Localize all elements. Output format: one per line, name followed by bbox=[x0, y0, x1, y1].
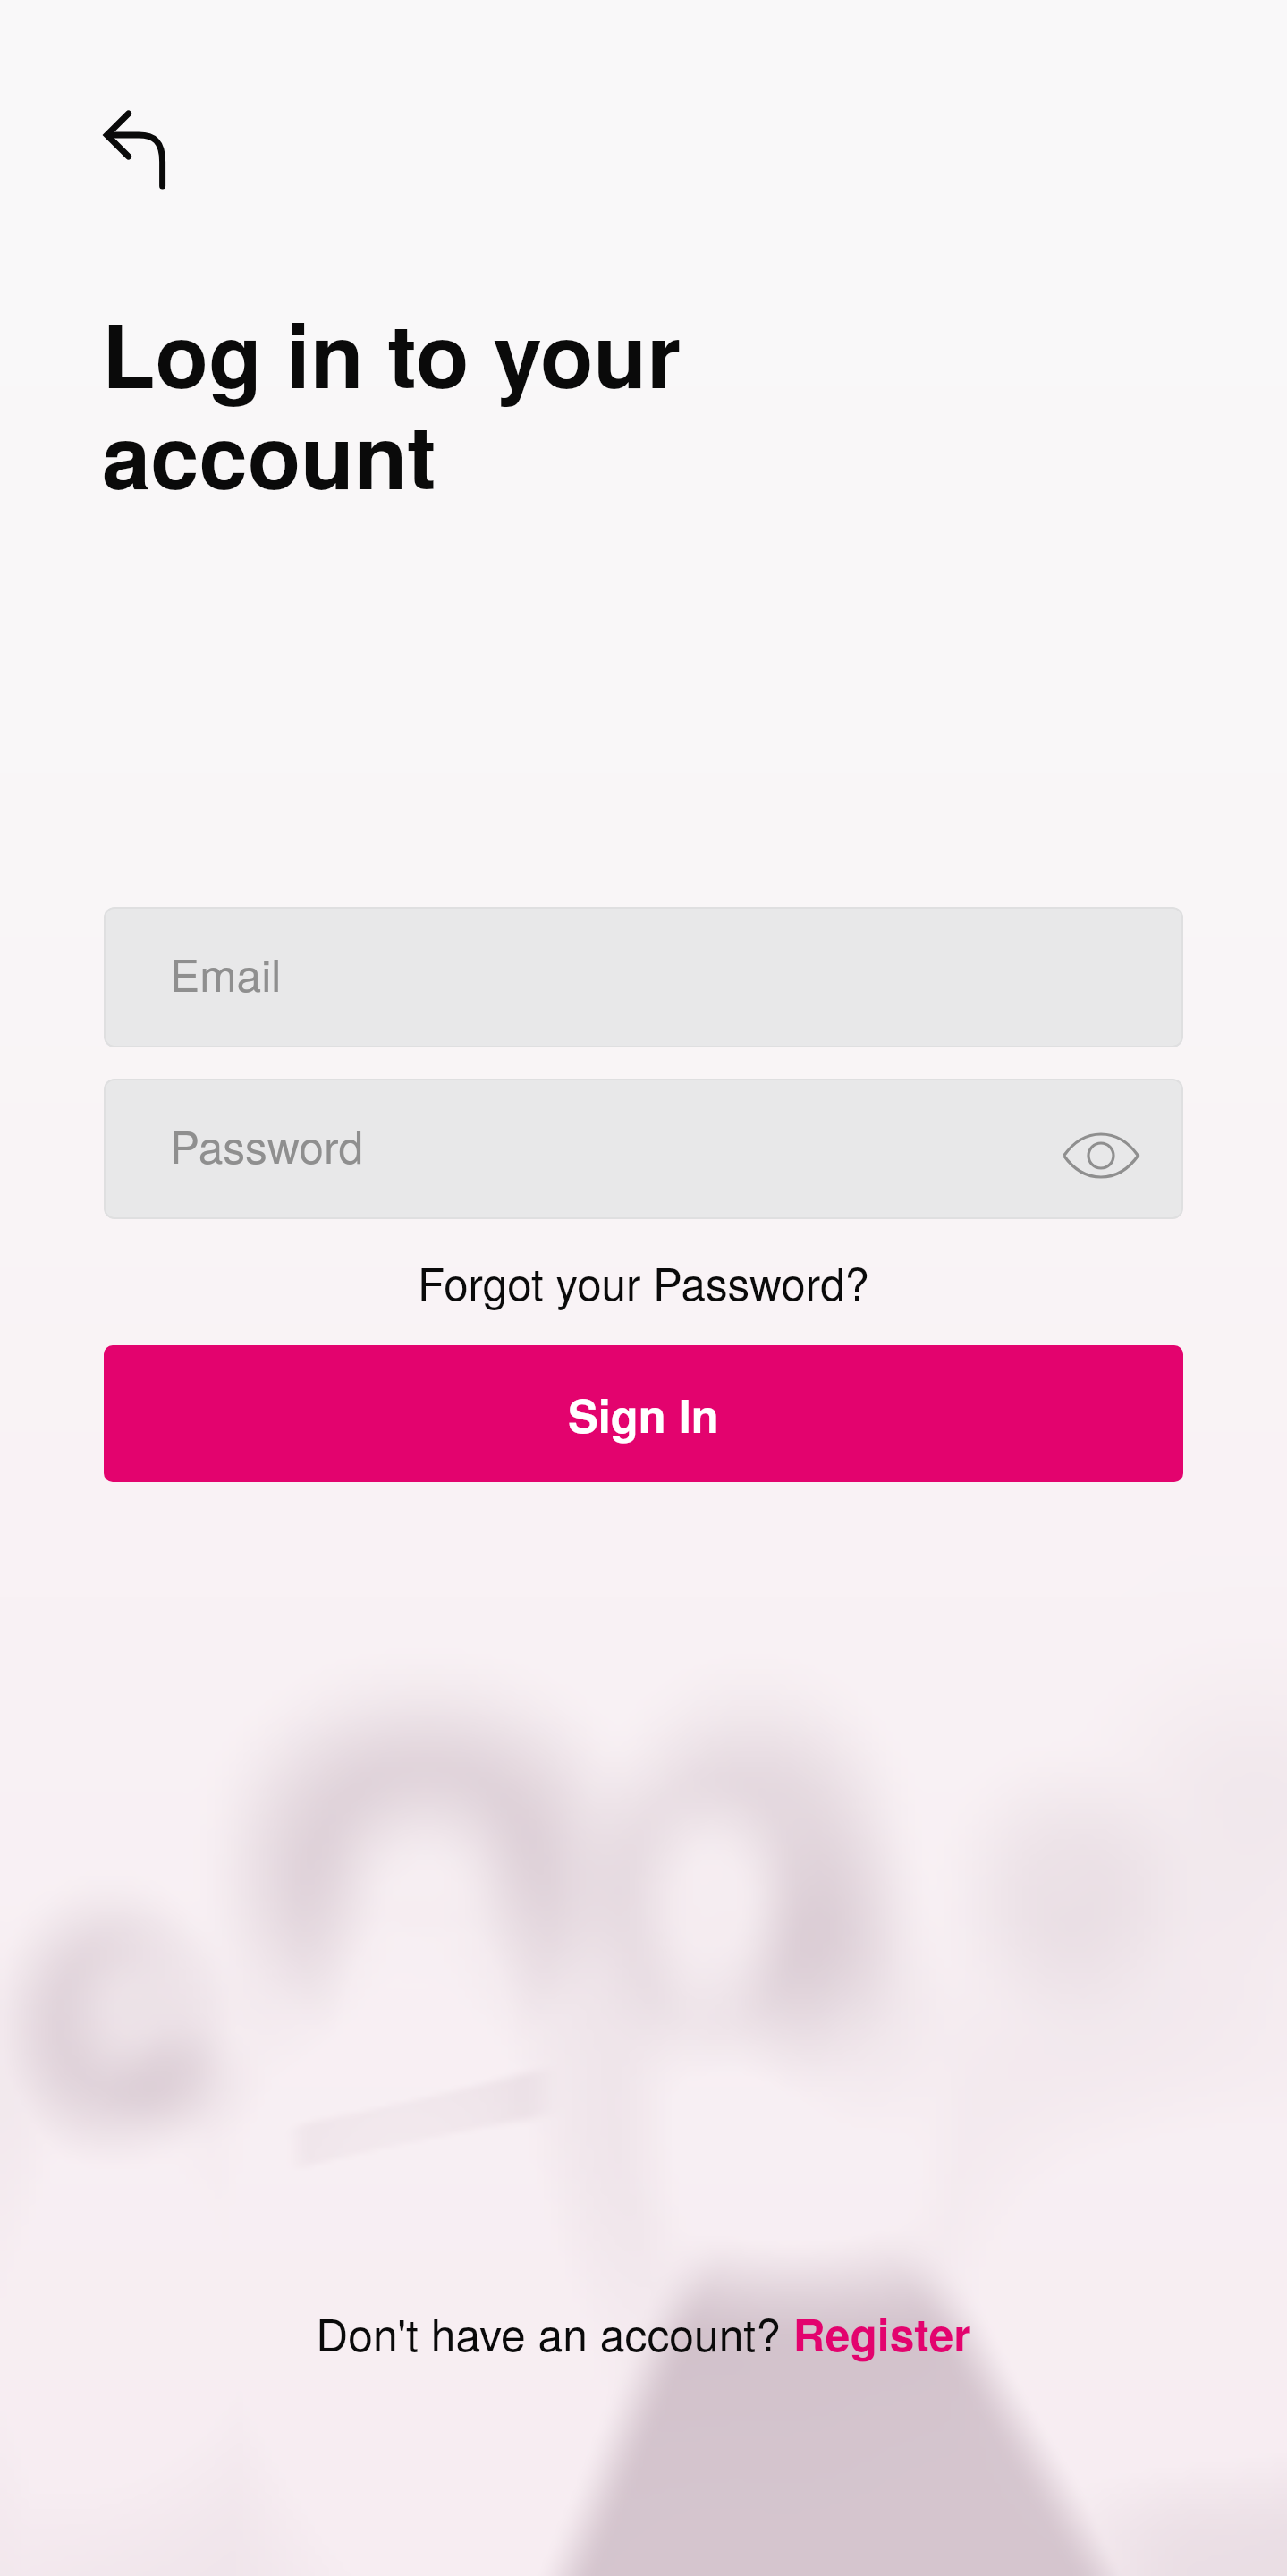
button[interactable]: Don't have an account? Register bbox=[0, 2293, 1287, 2372]
staticText: Password bbox=[170, 1113, 364, 1176]
button[interactable]: Email bbox=[104, 907, 1183, 1047]
button[interactable]: Show password bbox=[1056, 1111, 1146, 1200]
staticText: Forgot your Password? bbox=[418, 1250, 869, 1313]
button[interactable]: Back bbox=[89, 98, 188, 197]
staticText: Log in to your account bbox=[102, 290, 682, 516]
staticText: Sign In bbox=[568, 1382, 719, 1446]
staticText: Email bbox=[170, 941, 282, 1004]
button[interactable]: Password bbox=[104, 1079, 1183, 1219]
button[interactable]: Sign In bbox=[104, 1345, 1183, 1482]
staticText: Don't have an account? Register bbox=[316, 2301, 971, 2365]
button[interactable]: Forgot your Password? bbox=[0, 1241, 1287, 1320]
